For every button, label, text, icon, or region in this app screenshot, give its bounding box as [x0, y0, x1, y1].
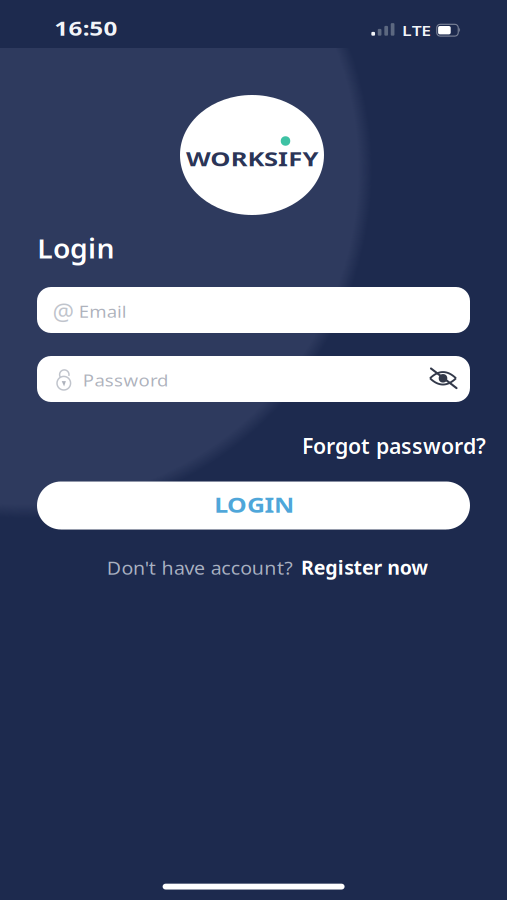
staticText: Forgot password?: [302, 431, 486, 460]
button[interactable]: Forgot password?: [302, 431, 486, 460]
staticText: 16:50: [61, 16, 110, 41]
staticText: Register now: [299, 555, 420, 580]
staticText: LOGIN: [220, 490, 288, 519]
button[interactable]: [428, 365, 458, 391]
staticText: WORKSIFY: [200, 145, 304, 172]
button[interactable]: LOGIN: [37, 481, 470, 529]
staticText: Don't have account?: [114, 555, 291, 580]
staticText: Email: [79, 301, 120, 322]
button[interactable]: @: [37, 287, 470, 333]
staticText: LTE: [404, 20, 428, 40]
staticText: Login: [37, 230, 110, 266]
staticText: @: [53, 295, 75, 327]
button[interactable]: Register now: [299, 555, 420, 580]
staticText: Password: [83, 370, 157, 391]
button[interactable]: Password: [37, 356, 470, 402]
